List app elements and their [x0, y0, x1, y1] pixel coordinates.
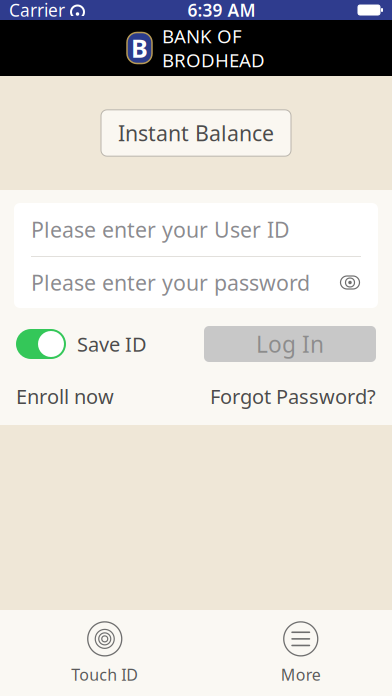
staticText: Instant Balance	[118, 119, 274, 147]
staticText: Please enter your User ID	[31, 215, 290, 244]
button[interactable]: Save ID	[16, 329, 147, 359]
staticText: BANK OF	[162, 24, 242, 48]
button[interactable]: More	[281, 621, 321, 685]
button[interactable]: Log In	[204, 326, 376, 362]
staticText: Touch ID	[71, 664, 138, 685]
button[interactable]: Please enter your User ID	[14, 203, 378, 256]
staticText: More	[281, 664, 321, 685]
staticText: Log In	[256, 329, 324, 359]
staticText: 6:39 AM	[187, 0, 255, 21]
staticText: BRODHEAD	[162, 47, 265, 72]
button[interactable]: Touch ID	[71, 621, 138, 685]
button[interactable]: Please enter your password	[14, 257, 378, 308]
staticText: Please enter your password	[31, 268, 310, 297]
staticText: B	[131, 31, 148, 65]
staticText: Carrier	[9, 0, 65, 21]
staticText: Forgot Password?	[210, 383, 376, 410]
button[interactable]: Enroll now	[16, 383, 114, 410]
staticText: Save ID	[77, 331, 147, 357]
button[interactable]: Forgot Password?	[210, 383, 376, 410]
button[interactable]: Instant Balance	[101, 110, 291, 156]
staticText: Enroll now	[16, 383, 114, 410]
